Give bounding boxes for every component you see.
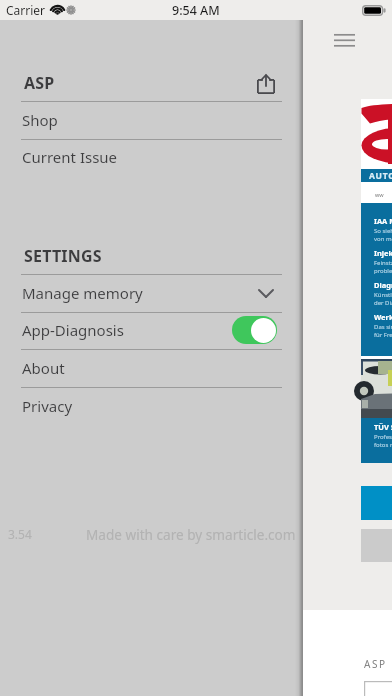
button[interactable]: App-Diagnosis (0, 313, 303, 350)
staticText: fotos mi (374, 441, 392, 449)
staticText: Made with care by smarticle.com (86, 525, 296, 544)
staticText: IAA M (374, 216, 392, 226)
staticText: Diagn (374, 280, 392, 290)
staticText: So sieht (374, 227, 392, 235)
staticText: 9:54 AM (172, 2, 220, 19)
staticText: Current Issue (22, 147, 118, 167)
staticText: ASP (24, 72, 55, 94)
staticText: About (22, 358, 65, 378)
button[interactable]: Open navigation menu (329, 27, 359, 52)
staticText: 3.54 (8, 526, 32, 542)
staticText: für Freu (374, 331, 392, 339)
button[interactable]: Manage memory (0, 276, 303, 313)
staticText: Injekt (374, 248, 392, 258)
staticText: problem (374, 267, 392, 275)
staticText: SETTINGS (24, 245, 102, 267)
staticText: ww (375, 191, 384, 198)
staticText: Das sind (374, 323, 392, 331)
staticText: Professi (374, 433, 392, 441)
staticText: Werks (374, 312, 392, 322)
staticText: Feinstz (374, 259, 392, 267)
staticText: der Diag (374, 299, 392, 307)
staticText: Privacy (22, 396, 73, 416)
button[interactable]: Current Issue (0, 140, 303, 177)
staticText: Carrier (6, 2, 46, 18)
staticText: Manage memory (22, 283, 143, 303)
button[interactable]: About (0, 351, 303, 388)
button[interactable]: Privacy (0, 389, 303, 426)
staticText: AUTO S (369, 170, 392, 182)
staticText: Künstlic (374, 291, 392, 299)
staticText: TÜV S (374, 422, 392, 432)
staticText: von mor (374, 235, 392, 243)
button[interactable]: Share (253, 70, 279, 96)
staticText: App-Diagnosis (22, 320, 124, 340)
button[interactable]: Shop (0, 103, 303, 140)
staticText: ASP (364, 657, 387, 671)
button[interactable]: App-Diagnosis toggle, on (232, 316, 277, 344)
staticText: Shop (22, 110, 58, 130)
